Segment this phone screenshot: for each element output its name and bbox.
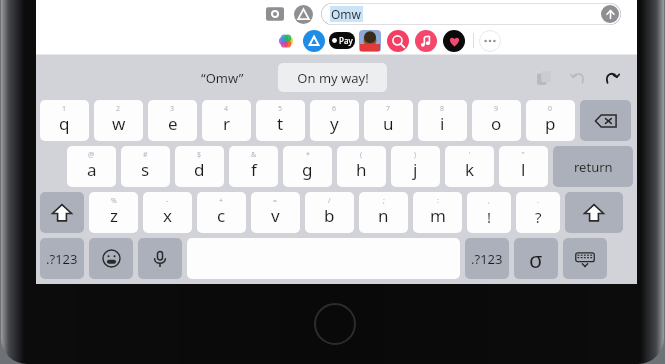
staticText: 3 xyxy=(170,104,175,114)
staticText: d xyxy=(194,158,205,181)
button[interactable]: 2 xyxy=(94,100,143,141)
button[interactable]: Shift xyxy=(565,192,623,233)
button[interactable]: Hide keyboard xyxy=(563,238,607,279)
button[interactable]: App Store xyxy=(300,27,328,54)
staticText: On my way! xyxy=(297,69,369,87)
button[interactable]: Photos xyxy=(272,27,300,54)
staticText: u xyxy=(383,112,394,135)
staticText: . xyxy=(537,196,539,206)
staticText: p xyxy=(545,112,556,135)
button[interactable]: ( xyxy=(337,146,386,187)
staticText: ; xyxy=(383,196,385,206)
staticText: ) xyxy=(414,150,417,160)
button[interactable]: , xyxy=(467,192,511,233)
button[interactable]: : xyxy=(413,192,462,233)
staticText: y xyxy=(330,112,339,135)
button[interactable]: / xyxy=(305,192,354,233)
button[interactable]: * xyxy=(283,146,332,187)
staticText: g xyxy=(302,158,313,181)
button[interactable]: Memoji xyxy=(356,27,384,54)
button[interactable]: 7 xyxy=(364,100,413,141)
button[interactable]: ” xyxy=(499,146,548,187)
button[interactable]: .?123 xyxy=(40,238,84,279)
button[interactable]: On my way! xyxy=(278,63,387,92)
button[interactable]: Omw xyxy=(321,3,621,25)
staticText: m xyxy=(430,204,446,227)
staticText: w xyxy=(112,112,126,135)
button[interactable]: Send xyxy=(601,5,619,23)
button[interactable]: # xyxy=(121,146,170,187)
button[interactable]: - xyxy=(143,192,192,233)
staticText: % xyxy=(111,196,117,206)
staticText: @ xyxy=(88,150,95,160)
staticText: c xyxy=(217,204,226,227)
button[interactable]: 4 xyxy=(202,100,251,141)
button[interactable]: Apple Pay xyxy=(328,27,356,54)
button[interactable]: Dictate xyxy=(138,238,182,279)
button[interactable]: 9 xyxy=(472,100,521,141)
button[interactable]: 6 xyxy=(310,100,359,141)
button[interactable]: Delete xyxy=(580,100,631,141)
button[interactable]: . xyxy=(516,192,560,233)
button[interactable]: Undo xyxy=(567,67,589,89)
staticText: ! xyxy=(487,207,492,227)
button[interactable]: .?123 xyxy=(465,238,509,279)
staticText: 1 xyxy=(62,104,67,114)
button[interactable]: Paste xyxy=(533,67,555,89)
staticText: Pay xyxy=(339,35,353,46)
staticText: t xyxy=(277,112,284,135)
button[interactable]: $ xyxy=(175,146,224,187)
button[interactable]: ) xyxy=(391,146,440,187)
button[interactable]: return xyxy=(553,146,633,187)
button[interactable]: Digital Touch xyxy=(440,27,468,54)
staticText: l xyxy=(521,158,526,181)
button[interactable]: Emoji xyxy=(89,238,133,279)
staticText: 4 xyxy=(224,104,229,114)
button[interactable]: + xyxy=(197,192,246,233)
button[interactable]: & xyxy=(229,146,278,187)
staticText: .?123 xyxy=(46,250,78,268)
button[interactable]: 8 xyxy=(418,100,467,141)
staticText: σ xyxy=(529,244,543,274)
button[interactable]: “Omw” xyxy=(201,69,244,87)
staticText: a xyxy=(87,158,97,181)
button[interactable]: 3 xyxy=(148,100,197,141)
staticText: o xyxy=(491,112,502,135)
staticText: ? xyxy=(535,207,542,227)
button[interactable]: Redo xyxy=(601,67,623,89)
staticText: 8 xyxy=(440,104,445,114)
staticText: 0 xyxy=(548,104,553,114)
staticText: 5 xyxy=(278,104,283,114)
staticText: k xyxy=(465,158,475,181)
staticText: i xyxy=(440,112,445,135)
button[interactable]: @ xyxy=(67,146,116,187)
button[interactable]: Home xyxy=(313,302,357,346)
staticText: $ xyxy=(197,150,202,160)
button[interactable]: % xyxy=(89,192,138,233)
staticText: s xyxy=(141,158,150,181)
button[interactable]: ’ xyxy=(445,146,494,187)
staticText: = xyxy=(273,196,278,206)
staticText: f xyxy=(251,158,257,181)
staticText: v xyxy=(271,204,280,227)
button[interactable]: Handwriting xyxy=(514,238,558,279)
staticText: * xyxy=(306,150,310,160)
staticText: q xyxy=(59,112,70,135)
staticText: r xyxy=(223,112,231,135)
button[interactable]: Camera xyxy=(264,3,286,25)
button[interactable]: Shift xyxy=(40,192,84,233)
staticText: ’ xyxy=(469,150,471,160)
button[interactable]: Images xyxy=(384,27,412,54)
button[interactable]: More xyxy=(479,30,501,52)
staticText: .?123 xyxy=(471,250,503,268)
button[interactable]: 1 xyxy=(40,100,89,141)
button[interactable]: ; xyxy=(359,192,408,233)
button[interactable]: App Store xyxy=(292,3,314,25)
button[interactable]: = xyxy=(251,192,300,233)
staticText: + xyxy=(219,196,224,206)
button[interactable]: 5 xyxy=(256,100,305,141)
button[interactable]: Music xyxy=(412,27,440,54)
button[interactable]: 0 xyxy=(526,100,575,141)
